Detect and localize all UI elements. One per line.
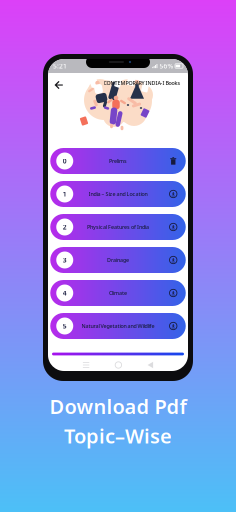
button[interactable]: Home bbox=[110, 357, 127, 373]
staticText: Download Pdf bbox=[49, 393, 186, 419]
staticText: Natural Vegetation and Wildlife bbox=[81, 322, 154, 330]
staticText: 0 bbox=[63, 157, 67, 165]
staticText: 5 bbox=[63, 322, 67, 330]
staticText: 1 bbox=[63, 190, 67, 198]
button[interactable]: Drainage bbox=[50, 247, 186, 273]
staticText: 3 bbox=[63, 256, 67, 264]
staticText: 2 bbox=[63, 223, 67, 231]
button[interactable]: Climate bbox=[50, 280, 186, 306]
staticText: CONTEMPORARY INDIA-I Books bbox=[103, 79, 180, 87]
staticText: Physical Features of India bbox=[87, 223, 149, 231]
staticText: Topic–Wise bbox=[64, 422, 172, 449]
button[interactable]: Back bbox=[50, 77, 67, 93]
button[interactable]: India – Size and Location bbox=[50, 181, 186, 207]
staticText: 56% bbox=[159, 62, 173, 70]
staticText: Drainage bbox=[107, 256, 129, 264]
button[interactable]: Prelims bbox=[50, 148, 186, 174]
staticText: Climate bbox=[109, 289, 127, 297]
button[interactable]: Physical Features of India bbox=[50, 214, 186, 240]
staticText: Prelims bbox=[109, 157, 127, 165]
staticText: 4 bbox=[63, 289, 67, 297]
staticText: 5:21 bbox=[53, 62, 67, 70]
staticText: India – Size and Location bbox=[88, 190, 147, 198]
button[interactable]: Natural Vegetation and Wildlife bbox=[50, 313, 186, 339]
button[interactable]: Recent apps bbox=[78, 357, 94, 373]
button[interactable]: Back bbox=[142, 357, 158, 373]
